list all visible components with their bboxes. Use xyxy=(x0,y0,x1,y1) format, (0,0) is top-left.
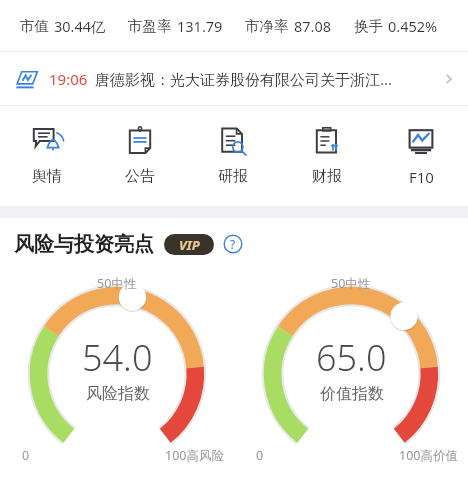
staticText: 19:06 xyxy=(49,69,88,89)
button[interactable]: 舆情 xyxy=(0,106,93,206)
staticText: 研报 xyxy=(218,167,248,186)
button[interactable]: VIP xyxy=(164,234,214,255)
button[interactable]: 公告 xyxy=(93,106,186,206)
staticText: 风险与投资亮点 xyxy=(14,232,154,257)
staticText: 市净率 xyxy=(245,17,289,35)
staticText: 0.452% xyxy=(388,16,438,36)
button[interactable]: 研报 xyxy=(186,106,280,206)
staticText: 0 xyxy=(22,447,30,464)
staticText: 30.44亿 xyxy=(54,16,106,36)
staticText: 65.0 xyxy=(316,333,387,382)
button[interactable]: F10 xyxy=(374,106,468,206)
staticText: 54.0 xyxy=(82,333,153,382)
staticText: 0 xyxy=(256,447,264,464)
staticText: 50中性 xyxy=(331,275,371,292)
button[interactable]: Help xyxy=(223,234,243,254)
staticText: 50中性 xyxy=(97,275,137,292)
staticText: VIP xyxy=(179,236,200,254)
button[interactable]: 财报 xyxy=(280,106,374,206)
staticText: 舆情 xyxy=(32,167,62,186)
staticText: 市值 xyxy=(20,17,49,35)
staticText: 价值指数 xyxy=(320,384,384,404)
button[interactable]: 19:06 xyxy=(0,52,468,105)
staticText: 87.08 xyxy=(294,16,332,36)
staticText: F10 xyxy=(409,167,434,187)
staticText: 唐德影视：光大证券股份有限公司关于浙江... xyxy=(95,69,438,89)
staticText: 100高价值 xyxy=(399,447,458,464)
staticText: 换手 xyxy=(354,17,383,35)
staticText: 市盈率 xyxy=(128,17,172,35)
staticText: 公告 xyxy=(125,167,155,186)
staticText: 131.79 xyxy=(177,16,223,36)
staticText: ? xyxy=(230,236,236,252)
staticText: 风险指数 xyxy=(86,384,150,404)
staticText: 100高风险 xyxy=(165,447,224,464)
staticText: 财报 xyxy=(312,167,342,186)
